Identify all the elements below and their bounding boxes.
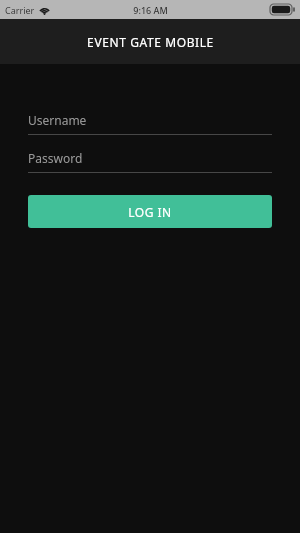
button[interactable]: Password [28, 144, 272, 173]
button[interactable]: Username [28, 106, 272, 135]
staticText: 9:16 AM [133, 4, 168, 16]
button[interactable]: LOG IN [28, 195, 272, 228]
staticText: Username [28, 112, 87, 128]
staticText: Password [28, 150, 83, 166]
staticText: EVENT GATE MOBILE [87, 34, 214, 50]
staticText: Carrier [5, 4, 35, 16]
staticText: LOG IN [128, 204, 172, 220]
